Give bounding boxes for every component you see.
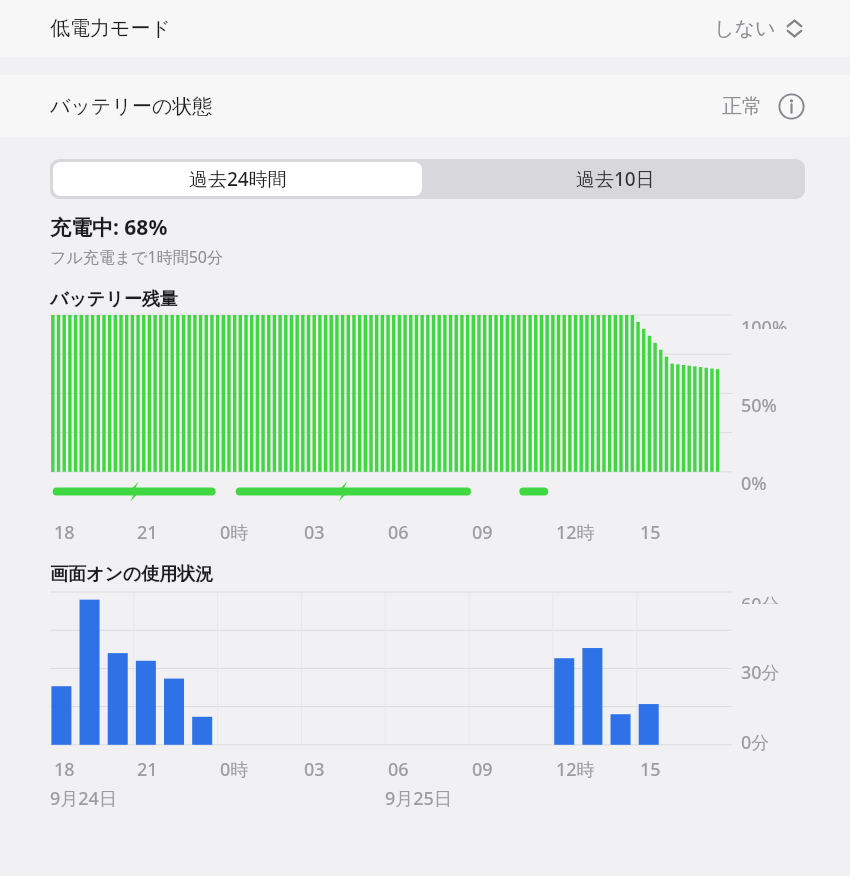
staticText: バッテリー残量 bbox=[50, 288, 178, 311]
staticText: バッテリーの状態 bbox=[50, 94, 213, 119]
staticText: 12時 bbox=[556, 757, 595, 782]
staticText: 0時 bbox=[220, 757, 249, 782]
staticText: 03 bbox=[304, 757, 325, 782]
staticText: 充電中: 68% bbox=[50, 213, 168, 242]
staticText: 12時 bbox=[556, 520, 595, 545]
staticText: 09 bbox=[472, 757, 493, 782]
staticText: 過去24時間 bbox=[189, 166, 287, 192]
other: Change low power mode bbox=[787, 17, 802, 40]
staticText: しない bbox=[714, 16, 776, 41]
staticText: 100% bbox=[741, 315, 788, 329]
button[interactable]: 低電力モード bbox=[0, 0, 850, 57]
staticText: 60分 bbox=[741, 592, 780, 604]
staticText: 21 bbox=[137, 757, 158, 782]
staticText: 21 bbox=[137, 520, 158, 545]
staticText: 9月25日 bbox=[385, 786, 452, 811]
staticText: 06 bbox=[388, 520, 409, 545]
staticText: 30分 bbox=[741, 660, 780, 684]
staticText: 15 bbox=[640, 520, 661, 545]
other: Battery health information bbox=[778, 93, 805, 120]
staticText: 18 bbox=[54, 757, 75, 782]
staticText: 06 bbox=[388, 757, 409, 782]
staticText: 15 bbox=[640, 757, 661, 782]
staticText: 0分 bbox=[741, 730, 770, 752]
staticText: 09 bbox=[472, 520, 493, 545]
staticText: フル充電まで1時間50分 bbox=[50, 246, 223, 268]
button[interactable]: 過去10日 bbox=[425, 159, 805, 199]
staticText: 低電力モード bbox=[50, 16, 171, 41]
button[interactable]: 過去24時間 bbox=[53, 162, 422, 196]
staticText: 18 bbox=[54, 520, 75, 545]
staticText: 9月24日 bbox=[50, 786, 117, 811]
staticText: 0時 bbox=[220, 520, 249, 545]
staticText: 50% bbox=[741, 393, 777, 417]
staticText: 正常 bbox=[722, 94, 762, 119]
staticText: 過去10日 bbox=[576, 166, 655, 192]
button[interactable]: バッテリーの状態 bbox=[0, 75, 850, 137]
staticText: 画面オンの使用状況 bbox=[50, 563, 214, 586]
staticText: 0% bbox=[741, 471, 767, 495]
staticText: 03 bbox=[304, 520, 325, 545]
